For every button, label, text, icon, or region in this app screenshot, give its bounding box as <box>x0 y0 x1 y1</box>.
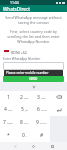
staticText: First, select country code by scrolling … <box>3 29 64 44</box>
staticText: 5 <box>21 106 24 113</box>
button[interactable]: 0 <box>16 129 33 142</box>
staticText: (IDN) +62 <box>11 50 27 55</box>
button[interactable]: 8 <box>16 116 33 129</box>
button[interactable]: 7 <box>0 116 16 129</box>
staticText: 4 <box>4 106 7 113</box>
staticText: WXYZ <box>40 121 47 124</box>
button[interactable]: (IDN) +62 <box>3 49 64 55</box>
button[interactable]: 1 <box>0 91 16 103</box>
staticText: 7 <box>3 119 6 126</box>
button[interactable]: # <box>33 129 50 142</box>
button[interactable]: 6 <box>33 103 50 116</box>
staticText: 11:04 <box>10 0 19 5</box>
staticText: SEND <box>29 77 38 81</box>
button[interactable]: 9 <box>33 116 50 129</box>
staticText: 3 <box>37 94 40 101</box>
staticText: 0 <box>22 132 25 139</box>
button[interactable]: Recents <box>49 143 56 150</box>
staticText: Send WhatsApp message without saving the… <box>3 15 64 25</box>
staticText: 9 <box>36 119 39 126</box>
staticText: PQRS <box>7 121 14 124</box>
button[interactable]: SEND <box>3 76 64 82</box>
staticText: 6 <box>37 106 40 113</box>
staticText: # <box>40 132 44 139</box>
button[interactable]: Hide keyboard <box>32 85 36 89</box>
staticText: TUV <box>24 121 29 124</box>
staticText: DEF <box>41 96 46 99</box>
staticText: Please enter mobile number <box>6 71 49 75</box>
staticText: 1 <box>7 94 10 101</box>
staticText: GHI <box>8 108 13 111</box>
staticText: + <box>26 134 28 137</box>
staticText: ABC <box>24 96 29 99</box>
staticText: JKL <box>25 108 29 111</box>
staticText: WhatsDirect <box>3 6 30 12</box>
button[interactable]: 4 <box>0 103 16 116</box>
staticText: 8 <box>20 119 23 126</box>
staticText: 2 <box>20 94 23 101</box>
button[interactable]: Backspace <box>50 91 67 103</box>
button[interactable]: 2 <box>16 91 33 103</box>
button[interactable] <box>3 62 64 70</box>
button[interactable]: 3 <box>33 91 50 103</box>
staticText: Enter WhatsApp Number <box>3 57 41 61</box>
button[interactable]: * <box>0 129 16 142</box>
button[interactable]: Back <box>12 143 19 150</box>
button[interactable]: 5 <box>16 103 33 116</box>
button[interactable]: Enter <box>50 103 67 116</box>
button[interactable]: Home <box>30 143 37 150</box>
staticText: MNO <box>41 108 47 111</box>
staticText: * <box>7 132 10 139</box>
